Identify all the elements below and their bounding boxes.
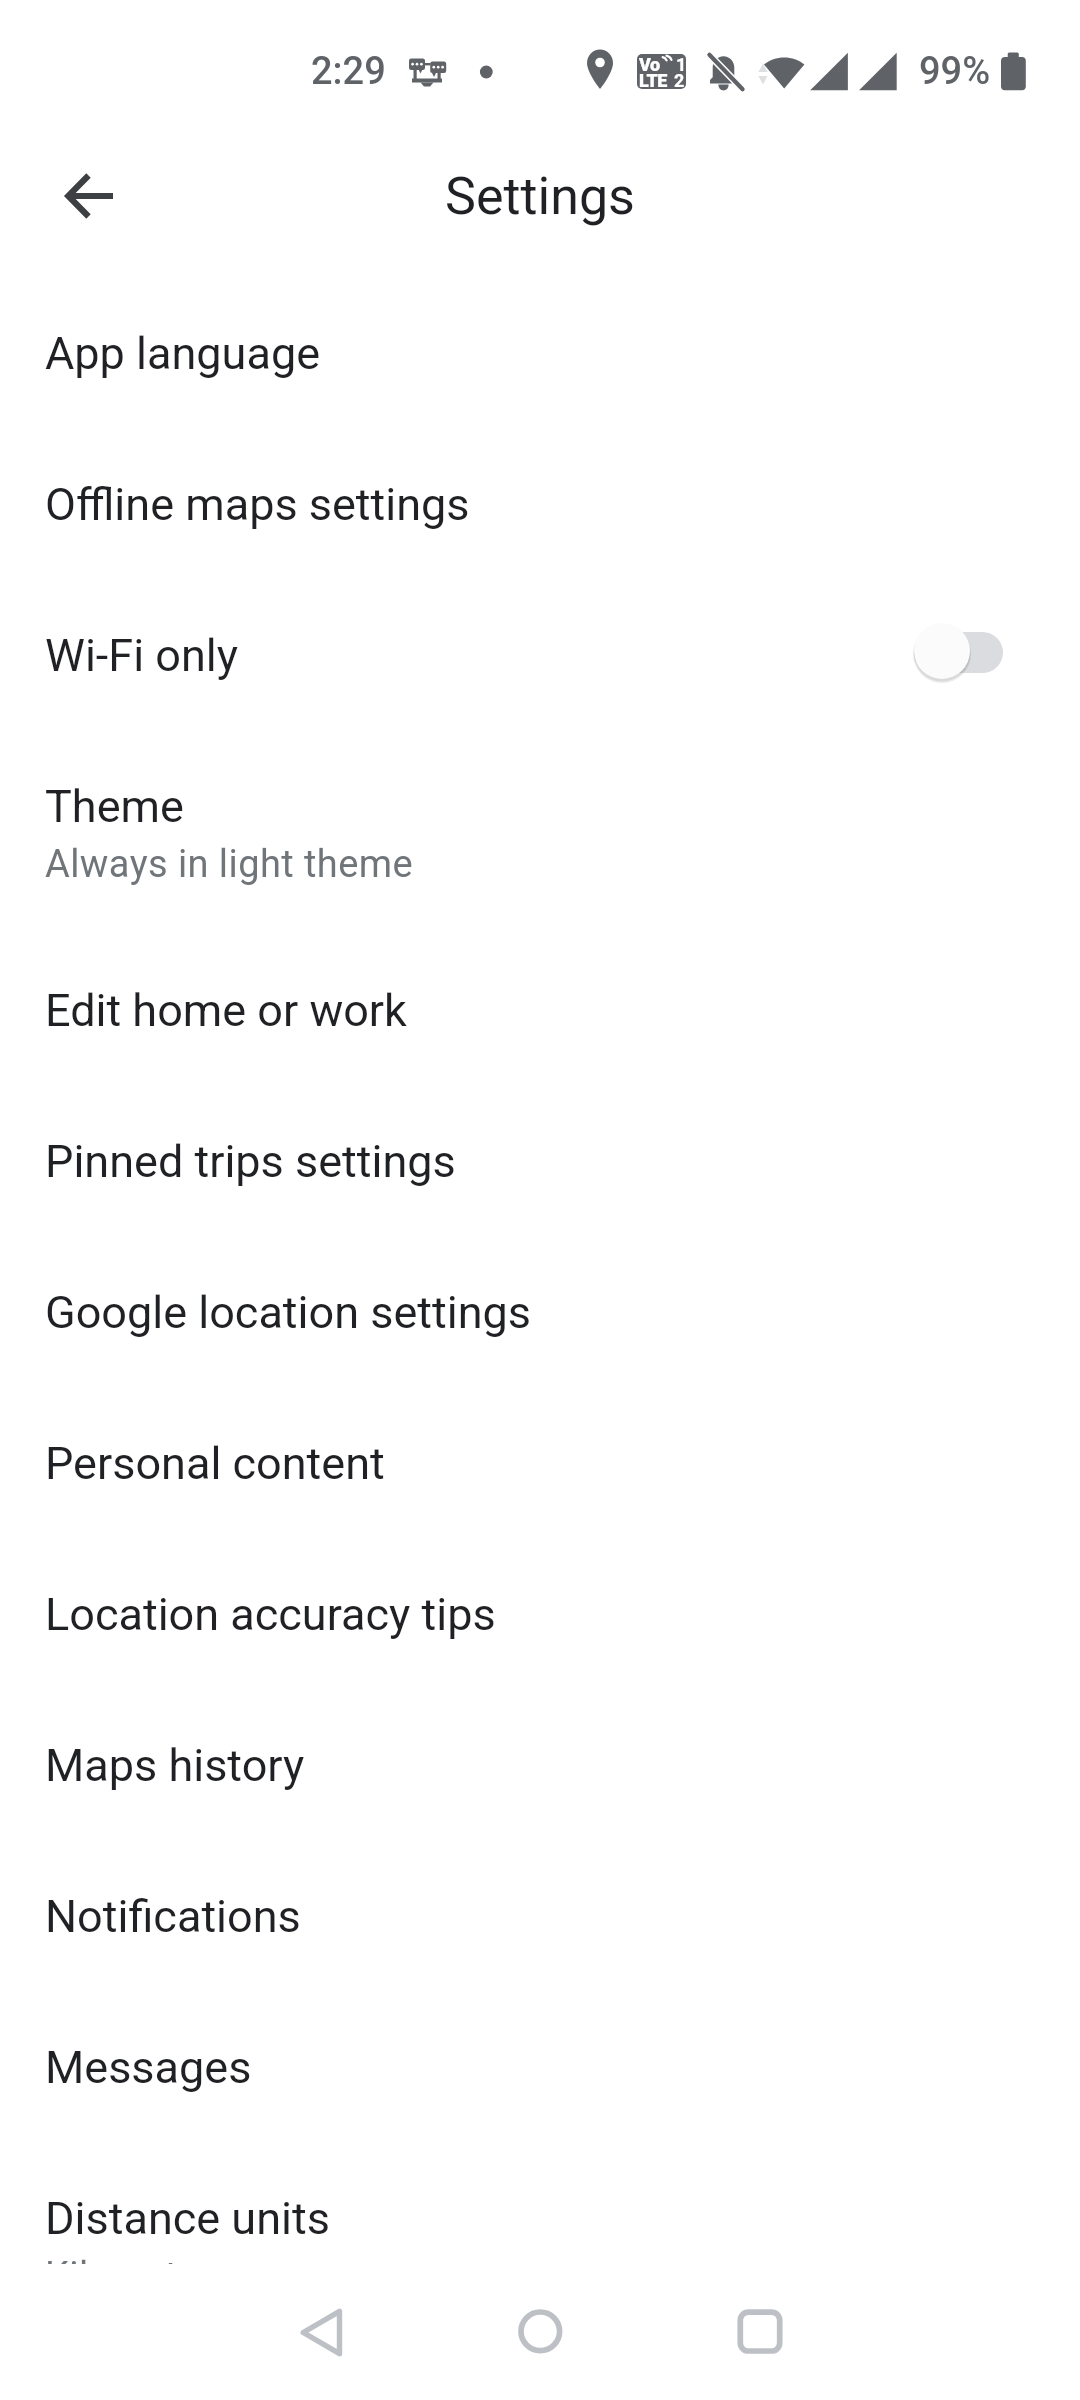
button[interactable]: Theme [0, 731, 1080, 935]
staticText: Maps history [45, 1739, 305, 1792]
staticText: Location accuracy tips [45, 1588, 496, 1641]
staticText: Offline maps settings [45, 478, 470, 531]
button[interactable]: Recent apps [705, 2277, 815, 2387]
staticText: Theme [45, 780, 184, 833]
staticText: Personal content [45, 1437, 385, 1490]
staticText: 1 [676, 54, 686, 75]
staticText: Wi-Fi only [45, 629, 239, 682]
staticText: Distance units [45, 2192, 330, 2245]
button[interactable]: Wi-Fi only, off [914, 632, 1003, 673]
staticText: 2:29 [311, 49, 386, 94]
button[interactable]: Offline maps settings [0, 429, 1080, 580]
button[interactable]: Personal content [0, 1388, 1080, 1539]
button[interactable]: Navigate up [41, 148, 137, 244]
button[interactable]: Back [266, 2277, 376, 2387]
staticText: Notifications [45, 1890, 301, 1943]
staticText: Messages [45, 2041, 252, 2094]
button[interactable]: Maps history [0, 1690, 1080, 1841]
staticText: Settings [0, 166, 1080, 227]
staticText: 99% [919, 49, 991, 94]
button[interactable]: App language [0, 278, 1080, 429]
staticText: Always in light theme [45, 842, 414, 887]
button[interactable]: Notifications [0, 1841, 1080, 1992]
button[interactable]: Edit home or work [0, 935, 1080, 1086]
button[interactable]: Wi-Fi only [0, 580, 1080, 731]
button[interactable]: Pinned trips settings [0, 1086, 1080, 1237]
button[interactable]: Messages [0, 1992, 1080, 2143]
button[interactable]: Location accuracy tips [0, 1539, 1080, 1690]
button[interactable]: Distance units [0, 2143, 1080, 2347]
button[interactable]: Google location settings [0, 1237, 1080, 1388]
staticText: Edit home or work [45, 984, 407, 1037]
staticText: Kilometers [45, 2254, 232, 2299]
staticText: Vo [639, 54, 660, 75]
staticText: 2 [674, 70, 685, 89]
button[interactable]: Home [485, 2277, 595, 2387]
staticText: Pinned trips settings [45, 1135, 456, 1188]
staticText: Google location settings [45, 1286, 532, 1339]
staticText: LTE [639, 70, 667, 89]
staticText: App language [45, 327, 321, 380]
